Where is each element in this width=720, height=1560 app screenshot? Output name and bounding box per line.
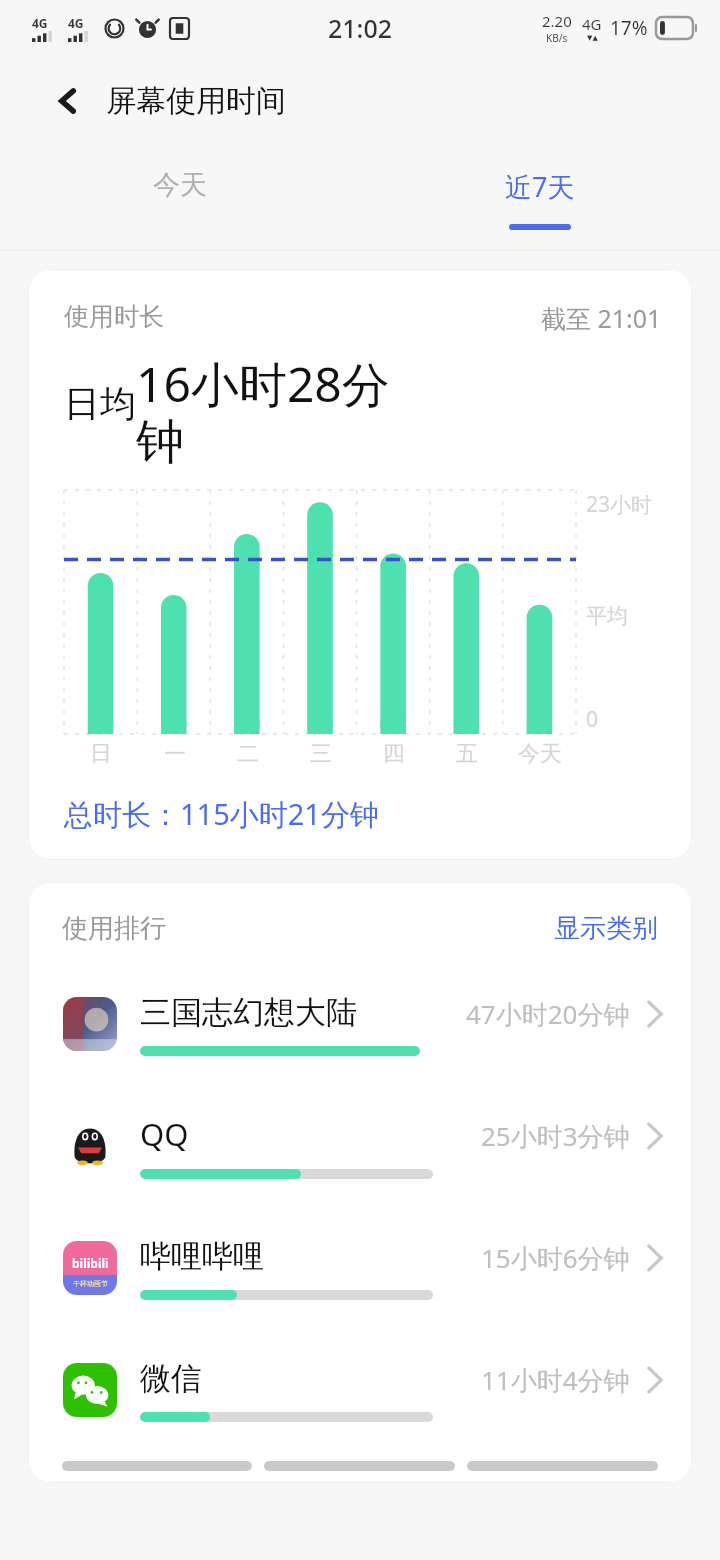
- staticText: 三: [310, 740, 332, 768]
- staticText: 25小时3分钟: [481, 1118, 630, 1154]
- staticText: 日均: [64, 381, 136, 426]
- staticText: 平均: [586, 603, 628, 629]
- staticText: 0: [586, 705, 599, 734]
- staticText: 4G: [582, 14, 602, 34]
- staticText: QQ: [140, 1113, 189, 1155]
- staticText: 显示类别: [554, 912, 658, 945]
- staticText: 干杯动画节: [73, 1279, 108, 1288]
- staticText: 23小时: [586, 490, 653, 519]
- button[interactable]: 微信: [28, 1329, 692, 1451]
- staticText: 总时长：115小时21分钟: [64, 794, 379, 834]
- staticText: 15小时6分钟: [481, 1240, 630, 1276]
- staticText: 4G: [32, 15, 48, 31]
- staticText: 11小时4分钟: [481, 1362, 630, 1398]
- staticText: 使用排行: [62, 912, 166, 945]
- staticText: bilibili: [72, 1255, 109, 1271]
- staticText: 17%: [610, 15, 648, 41]
- staticText: 三国志幻想大陆: [140, 993, 357, 1032]
- staticText: 近7天: [505, 168, 575, 205]
- button[interactable]: QQ: [28, 1085, 692, 1207]
- staticText: 日: [90, 740, 112, 768]
- staticText: 四: [383, 740, 405, 768]
- staticText: 使用时长: [64, 301, 164, 332]
- staticText: 47小时20分钟: [466, 996, 630, 1032]
- staticText: 五: [456, 740, 478, 768]
- staticText: 21:02: [328, 11, 393, 45]
- staticText: 二: [237, 740, 259, 768]
- staticText: 今天: [518, 740, 562, 768]
- button[interactable]: 近7天: [360, 146, 720, 250]
- staticText: 微信: [140, 1359, 202, 1398]
- staticText: 4G: [68, 15, 84, 31]
- staticText: 2.20: [542, 11, 572, 31]
- staticText: 哔哩哔哩: [140, 1237, 264, 1276]
- button[interactable]: 今天: [0, 146, 360, 250]
- button[interactable]: 三国志幻想大陆: [28, 963, 692, 1085]
- staticText: 屏幕使用时间: [106, 82, 286, 120]
- staticText: 一: [164, 740, 186, 768]
- button[interactable]: 总时长：115小时21分钟: [64, 794, 379, 834]
- staticText: ▼▲: [587, 34, 598, 42]
- staticText: KB/s: [546, 31, 568, 45]
- button[interactable]: bilibili: [28, 1207, 692, 1329]
- button[interactable]: Back: [44, 77, 92, 125]
- staticText: 16小时28分钟: [136, 351, 406, 472]
- staticText: 今天: [153, 168, 207, 202]
- staticText: 截至 21:01: [541, 301, 662, 335]
- button[interactable]: 显示类别: [554, 912, 658, 945]
